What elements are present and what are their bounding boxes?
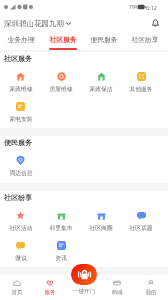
staticText: 服务	[44, 289, 56, 296]
staticText: 其他服务	[129, 85, 153, 92]
button[interactable]: 社区商圈	[81, 211, 121, 235]
staticText: 房屋维修	[49, 85, 73, 92]
button[interactable]: 资讯	[41, 241, 81, 265]
staticText: 社区服务	[49, 35, 77, 44]
staticText: 家电安装	[9, 115, 33, 122]
button[interactable]: 周边信息	[0, 156, 41, 180]
staticText: 社区纷享	[4, 193, 32, 202]
button[interactable]: 社区纷享	[124, 31, 165, 50]
button[interactable]: 微说	[0, 241, 41, 265]
button[interactable]: 服务	[33, 275, 66, 300]
staticText: 社区服务	[4, 54, 32, 63]
staticText: 便民服务	[4, 138, 32, 147]
staticText: 79%	[129, 4, 139, 11]
staticText: 社区商圈	[89, 224, 113, 231]
button[interactable]: 社区服务	[42, 31, 83, 50]
staticText: 商城	[111, 289, 123, 296]
button[interactable]: 邻里集市	[41, 211, 81, 235]
button[interactable]: 家政保洁	[81, 72, 121, 96]
staticText: 首页	[11, 289, 23, 296]
staticText: 邻里集市	[49, 224, 73, 231]
staticText: 业务办理	[7, 35, 35, 44]
staticText: 社区活动	[9, 224, 33, 231]
staticText: 周边信息	[9, 169, 33, 176]
button[interactable]: 首页	[0, 275, 33, 300]
staticText: 家政保洁	[89, 85, 113, 92]
staticText: 资讯	[55, 254, 67, 261]
button[interactable]: 其他服务	[121, 72, 161, 96]
staticText: 社区话题	[129, 224, 153, 231]
staticText: 一键开门	[64, 288, 104, 295]
button[interactable]: 深圳碧山花园九期	[4, 19, 71, 28]
staticText: 微说	[15, 254, 27, 261]
button[interactable]: 业务办理	[0, 31, 42, 50]
button[interactable]: 商城	[100, 275, 134, 300]
button[interactable]: 便民服务	[83, 31, 124, 50]
staticText: 家政维修	[9, 85, 33, 92]
button[interactable]: 房屋维修	[41, 72, 81, 96]
staticText: 6:12	[146, 4, 157, 11]
button[interactable]: 我的	[134, 275, 168, 300]
button[interactable]: 一键开门	[71, 264, 97, 285]
staticText: 社区纷享	[131, 35, 159, 44]
button[interactable]: 家政维修	[0, 72, 41, 96]
button[interactable]: 社区活动	[0, 211, 41, 235]
button[interactable]: 社区话题	[121, 211, 161, 235]
button[interactable]: 通知	[150, 18, 160, 28]
staticText: 深圳碧山花园九期	[4, 19, 64, 28]
button[interactable]: 家电安装	[0, 102, 41, 126]
staticText: 便民服务	[90, 35, 118, 44]
staticText: 我的	[145, 289, 157, 296]
